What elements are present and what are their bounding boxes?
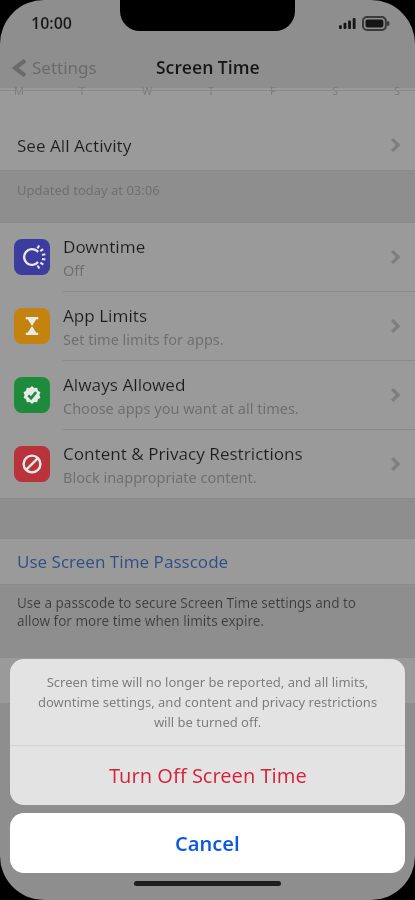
button[interactable]: Always Allowed	[0, 361, 415, 430]
staticText: Use Screen Time Passcode	[17, 550, 229, 573]
staticText: Use a passcode to secure Screen Time set…	[17, 594, 391, 630]
button[interactable]: Settings	[10, 50, 101, 85]
button[interactable]: Cancel	[10, 813, 405, 873]
staticText: Screen Time	[156, 55, 260, 79]
staticText: Turn Off Screen Time	[109, 762, 307, 789]
staticText: Choose apps you want at all times.	[63, 398, 299, 418]
staticText: Block inappropriate content.	[63, 467, 257, 487]
button[interactable]: See All Activity	[0, 120, 415, 170]
staticText: T	[79, 83, 86, 98]
button[interactable]: App Limits	[0, 292, 415, 361]
staticText: Always Allowed	[63, 373, 186, 396]
staticText: Settings	[32, 56, 97, 79]
staticText: T	[208, 83, 215, 98]
staticText: App Limits	[63, 304, 148, 327]
staticText: Turn Off Screen Time	[17, 669, 186, 692]
staticText: See All Activity	[17, 134, 132, 157]
staticText: Cancel	[175, 830, 240, 857]
staticText: S	[394, 83, 401, 98]
button[interactable]: Turn Off Screen Time	[0, 658, 415, 703]
button[interactable]: Use Screen Time Passcode	[0, 539, 415, 584]
staticText: 10:00	[31, 12, 73, 34]
staticText: Downtime	[63, 235, 146, 258]
staticText: Content & Privacy Restrictions	[63, 442, 303, 465]
button[interactable]: Turn Off Screen Time	[10, 746, 405, 805]
button[interactable]: Content & Privacy Restrictions	[0, 430, 415, 498]
staticText: Set time limits for apps.	[63, 329, 224, 349]
staticText: Updated today at 03:06	[17, 181, 160, 199]
staticText: W	[142, 83, 153, 98]
staticText: Screen time will no longer be reported, …	[32, 673, 383, 731]
staticText: Off	[63, 260, 85, 280]
staticText: S	[332, 83, 339, 98]
staticText: F	[270, 83, 276, 98]
staticText: M	[14, 83, 24, 98]
button[interactable]: Downtime	[0, 223, 415, 292]
